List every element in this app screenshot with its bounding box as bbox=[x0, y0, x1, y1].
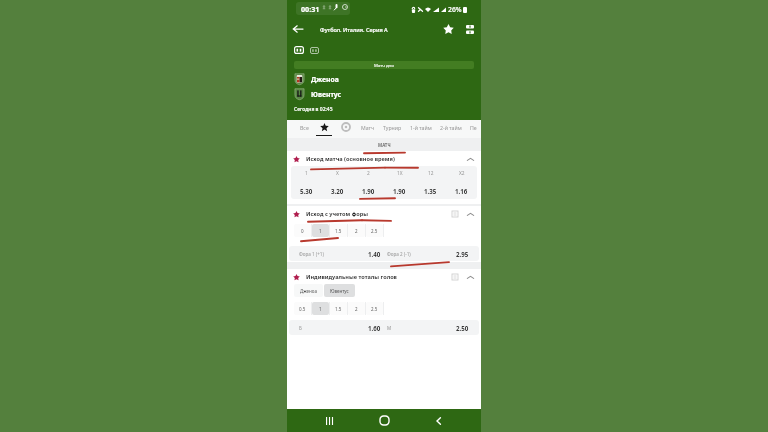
staticText: Исход с учетом форы bbox=[306, 210, 368, 218]
button[interactable]: Collapse bbox=[464, 271, 476, 283]
button[interactable]: Индивидуальные тоталы голов bbox=[288, 269, 480, 284]
button[interactable]: Дженоа bbox=[294, 73, 481, 85]
staticText: 1.60 bbox=[368, 324, 381, 332]
staticText: Турнир bbox=[383, 124, 402, 131]
staticText: Ювентус bbox=[311, 90, 342, 99]
button[interactable]: Ювентус bbox=[294, 88, 481, 100]
button[interactable]: Table view bbox=[310, 47, 319, 54]
button[interactable]: 2-й тайм bbox=[436, 120, 466, 138]
button[interactable]: Исход матча (основное время) bbox=[288, 151, 480, 166]
button[interactable]: Фора 1 (+1) bbox=[289, 246, 384, 261]
button[interactable]: Фора 2 (-1) bbox=[384, 246, 479, 261]
staticText: 1X bbox=[397, 170, 403, 177]
button[interactable]: 1 bbox=[312, 224, 329, 237]
button[interactable]: Матч bbox=[357, 120, 379, 138]
button[interactable]: 2 bbox=[348, 224, 365, 237]
staticText: Фора 2 (-1) bbox=[387, 251, 411, 257]
staticText: 2 bbox=[355, 228, 358, 234]
button[interactable]: 2 bbox=[348, 302, 365, 315]
staticText: 26% bbox=[448, 5, 462, 14]
staticText: 1.90 bbox=[362, 187, 375, 195]
staticText: 12 bbox=[428, 170, 434, 177]
staticText: М bbox=[387, 325, 392, 331]
staticText: Все bbox=[300, 124, 309, 131]
staticText: 2 bbox=[367, 170, 370, 177]
staticText: 2-й тайм bbox=[440, 124, 462, 131]
button[interactable]: Home bbox=[372, 409, 396, 432]
button[interactable]: М bbox=[384, 320, 479, 335]
button[interactable]: Ювентус bbox=[324, 284, 355, 297]
staticText: Футбол. Италия. Серия А bbox=[320, 26, 388, 33]
staticText: Исход матча (основное время) bbox=[306, 155, 395, 163]
button[interactable]: Favorite bbox=[438, 19, 459, 40]
button[interactable]: Back bbox=[427, 409, 451, 432]
staticText: 2.5 bbox=[371, 228, 378, 234]
button[interactable]: Все bbox=[296, 120, 313, 138]
staticText: Фора 1 (+1) bbox=[299, 251, 324, 257]
button[interactable]: Live tab bbox=[335, 120, 357, 138]
button[interactable]: Recent apps bbox=[318, 409, 342, 432]
button[interactable]: Favorites tab bbox=[313, 120, 335, 138]
staticText: 1.35 bbox=[424, 187, 437, 195]
button[interactable]: Collapse bbox=[464, 153, 476, 165]
staticText: МАТЧ bbox=[378, 142, 391, 148]
button[interactable]: 1 bbox=[312, 302, 329, 315]
button[interactable]: Турнир bbox=[379, 120, 406, 138]
staticText: 1 bbox=[319, 228, 322, 234]
staticText: Матч bbox=[361, 124, 375, 131]
staticText: Б bbox=[299, 325, 302, 331]
staticText: 2 bbox=[355, 306, 358, 312]
staticText: 2.5 bbox=[371, 306, 378, 312]
button[interactable]: Stadium view bbox=[294, 46, 304, 54]
button[interactable]: 3.20 bbox=[322, 187, 353, 195]
staticText: 0 bbox=[301, 228, 304, 234]
staticText: 1.16 bbox=[455, 187, 468, 195]
staticText: Индивидуальные тоталы голов bbox=[306, 273, 397, 281]
button[interactable]: 2.5 bbox=[366, 302, 383, 315]
staticText: 1.5 bbox=[335, 306, 342, 312]
button[interactable]: Б bbox=[289, 320, 384, 335]
button[interactable]: 2.5 bbox=[366, 224, 383, 237]
button[interactable]: 5.30 bbox=[291, 187, 322, 195]
staticText: Дженоа bbox=[311, 75, 339, 84]
button[interactable]: 1.5 bbox=[330, 302, 347, 315]
staticText: 1-й тайм bbox=[410, 124, 432, 131]
button[interactable]: Матч дня bbox=[294, 61, 474, 69]
staticText: Матч дня bbox=[374, 62, 394, 68]
button[interactable]: 0.5 bbox=[294, 302, 311, 315]
staticText: 1 bbox=[305, 170, 308, 177]
button[interactable]: Statistics bbox=[449, 208, 461, 220]
staticText: 1.90 bbox=[393, 187, 406, 195]
button[interactable]: 1.5 bbox=[330, 224, 347, 237]
button[interactable]: Statistics bbox=[449, 271, 461, 283]
staticText: 1 bbox=[319, 306, 322, 312]
staticText: 00:31 bbox=[301, 4, 320, 14]
button[interactable]: Collapse bbox=[464, 208, 476, 220]
staticText: Дженоа bbox=[300, 288, 318, 294]
button[interactable]: 1.90 bbox=[353, 187, 384, 195]
button[interactable]: Back bbox=[287, 18, 309, 40]
staticText: Пер bbox=[470, 124, 477, 131]
button[interactable]: 1.90 bbox=[384, 187, 415, 195]
button[interactable]: 1-й тайм bbox=[406, 120, 436, 138]
button[interactable]: 1.16 bbox=[446, 187, 477, 195]
button[interactable]: 0 bbox=[294, 224, 311, 237]
button[interactable]: 1.35 bbox=[415, 187, 446, 195]
staticText: X2 bbox=[459, 170, 465, 177]
staticText: 2.95 bbox=[456, 250, 469, 258]
staticText: Ювентус bbox=[330, 288, 349, 294]
staticText: 3.20 bbox=[331, 187, 344, 195]
staticText: Сегодня в 02:45 bbox=[294, 106, 333, 113]
staticText: 0.5 bbox=[299, 306, 306, 312]
button[interactable]: Пер bbox=[466, 120, 481, 138]
button[interactable]: Исход с учетом форы bbox=[288, 206, 480, 221]
button[interactable]: Дженоа bbox=[294, 284, 323, 297]
staticText: X bbox=[336, 170, 339, 177]
staticText: 1.5 bbox=[335, 228, 342, 234]
button[interactable]: Broadcast bbox=[459, 19, 480, 40]
staticText: 2.50 bbox=[456, 324, 469, 332]
staticText: 5.30 bbox=[300, 187, 313, 195]
staticText: 1.40 bbox=[368, 250, 381, 258]
